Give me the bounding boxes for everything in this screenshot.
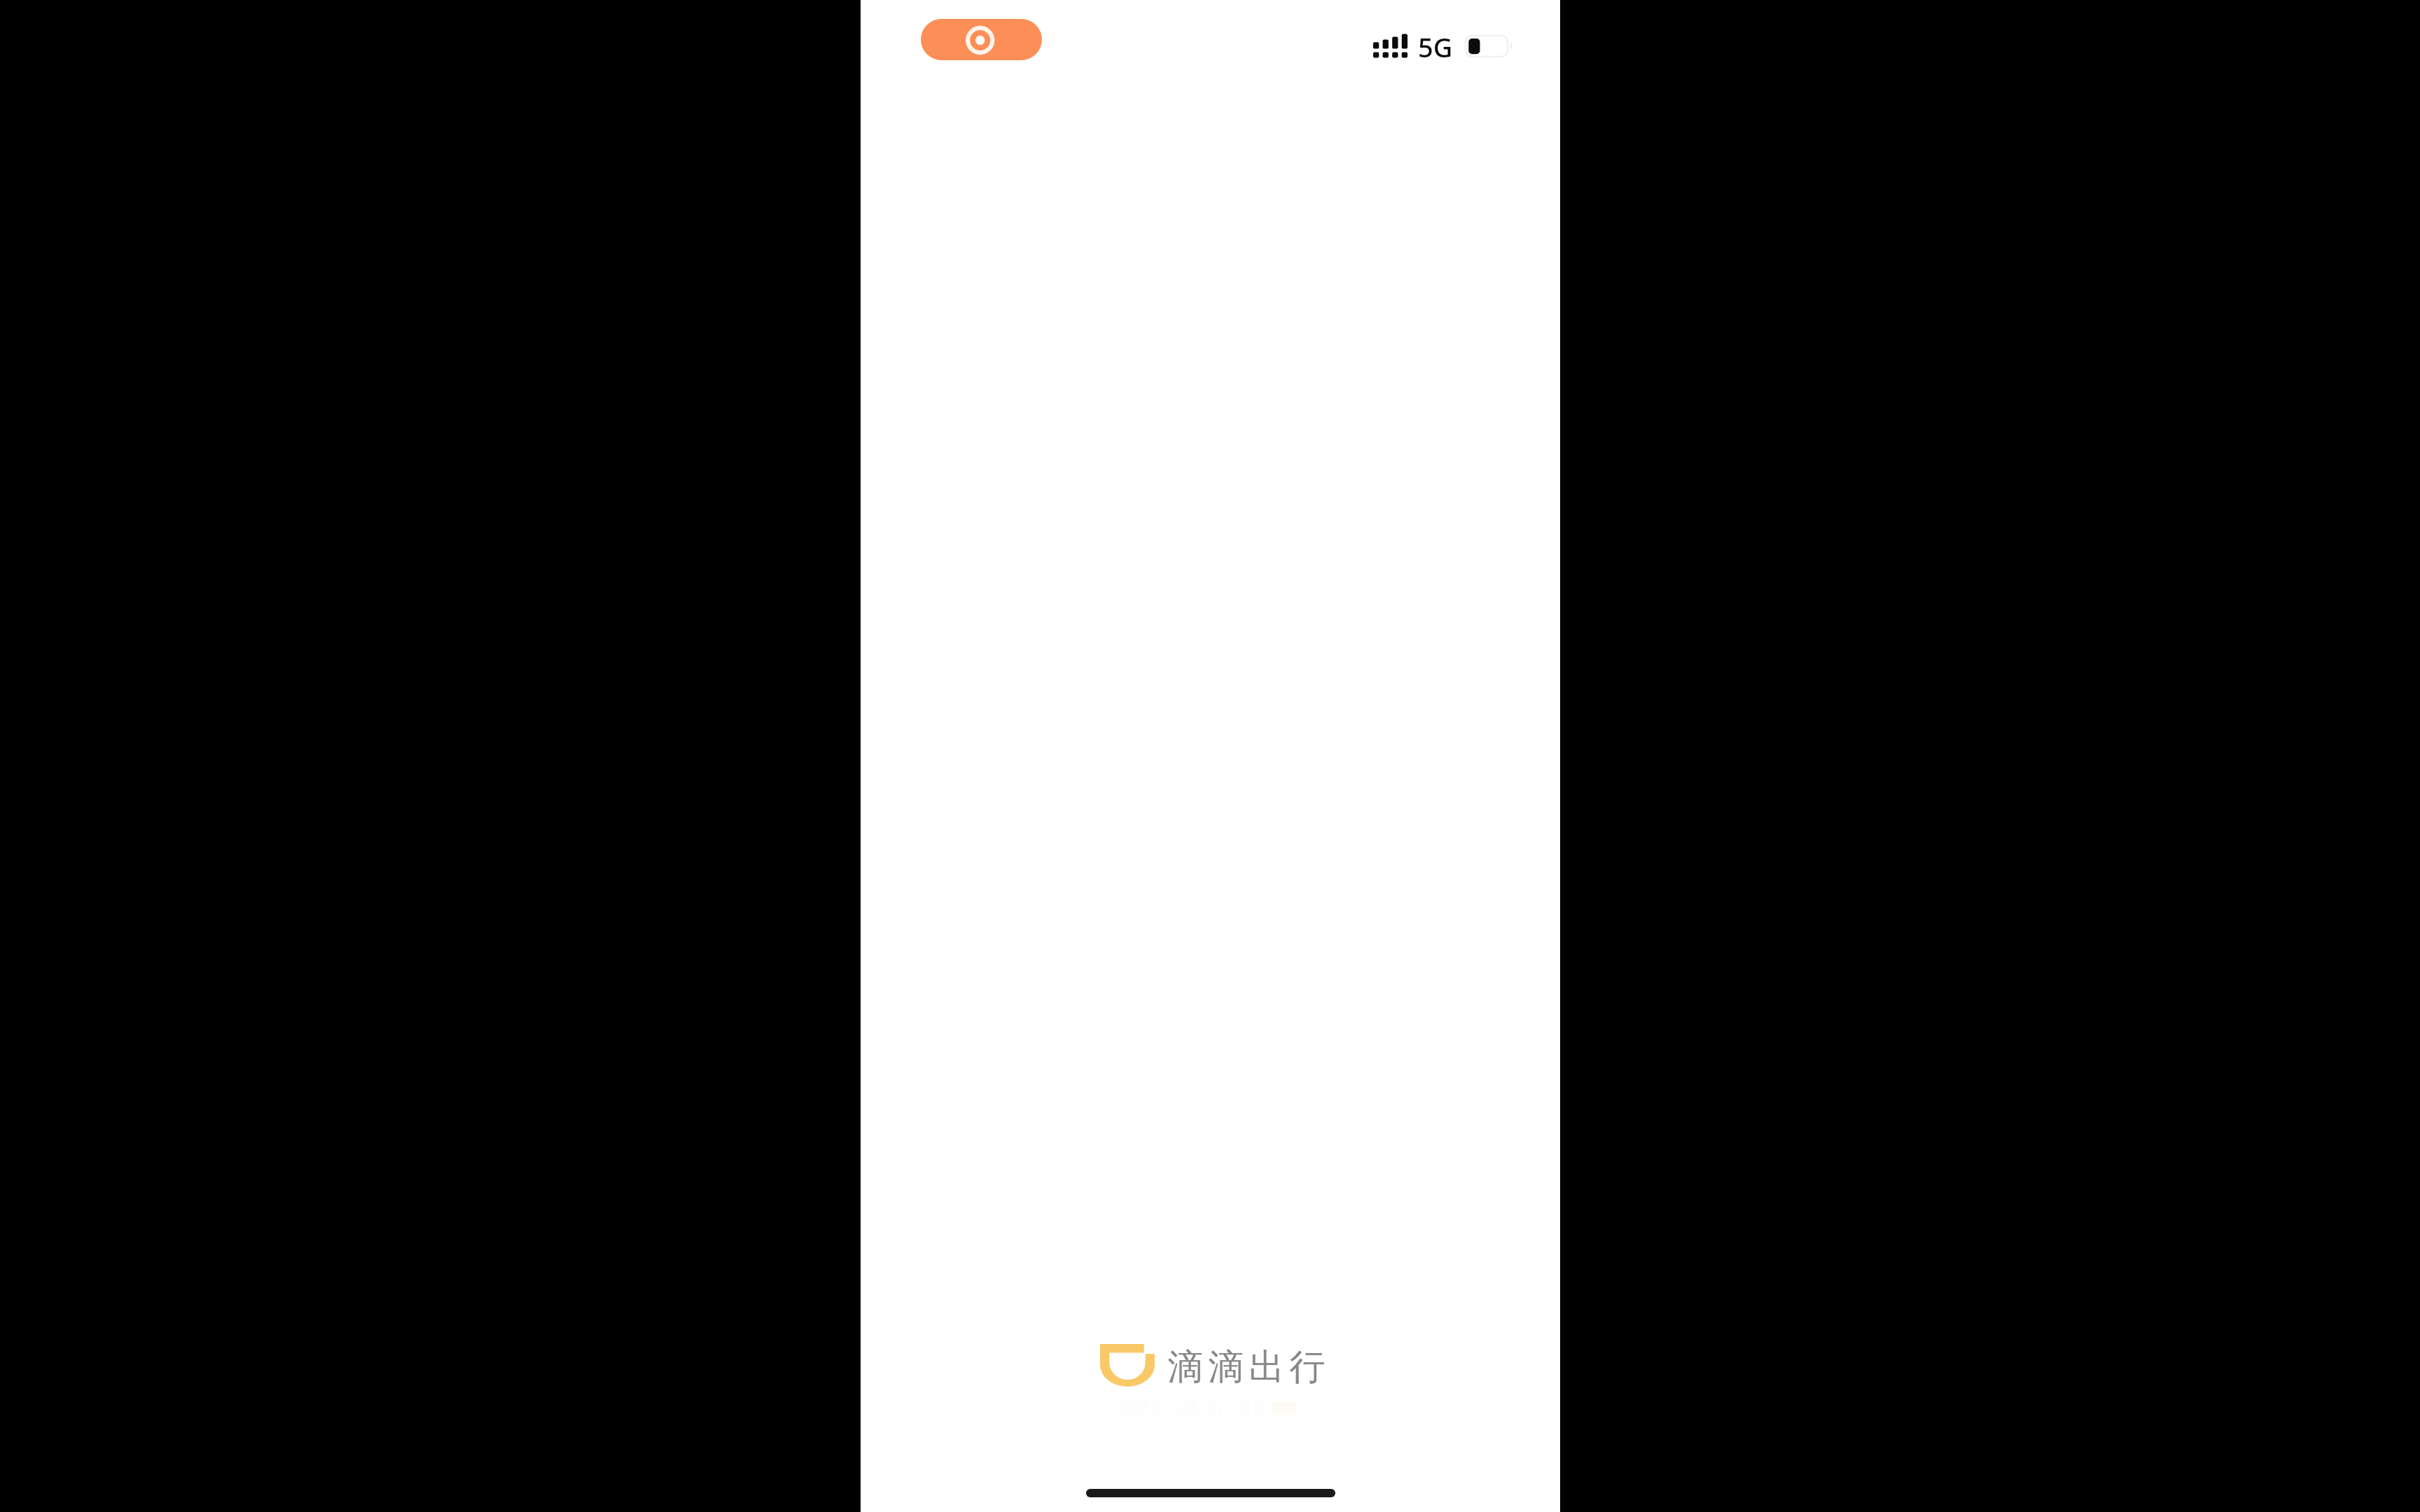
- staticText: 滴滴出行: [1165, 1345, 1328, 1389]
- staticText: 5G: [1418, 29, 1453, 65]
- button[interactable]: Camera in use: [921, 19, 1042, 60]
